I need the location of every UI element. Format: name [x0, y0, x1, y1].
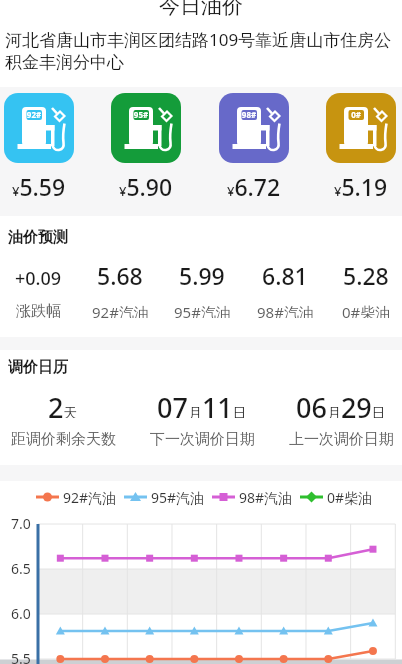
staticText: 0#柴油 [342, 302, 391, 318]
staticText: 2天 [48, 389, 78, 418]
staticText: 涨跌幅 [16, 302, 61, 318]
button[interactable]: 98# [219, 93, 289, 163]
staticText: ¥5.19 [334, 171, 388, 202]
staticText: 河北省唐山市丰润区团结路109号靠近唐山市住房公积金丰润分中心 [5, 28, 398, 73]
staticText: 今日油价 [159, 0, 243, 19]
staticText: 0# [348, 109, 364, 120]
staticText: 95# [133, 109, 149, 120]
staticText: 0#柴油 [327, 488, 373, 506]
staticText: 上一次调价日期 [289, 430, 394, 446]
staticText: 95#汽油 [151, 488, 205, 506]
staticText: 油价预测 [8, 228, 68, 247]
staticText: 5.5 [11, 649, 31, 664]
staticText: 98# [241, 109, 257, 120]
staticText: 98#汽油 [239, 488, 293, 506]
staticText: 92#汽油 [63, 488, 117, 506]
staticText: 6.0 [11, 604, 31, 622]
staticText: 距调价剩余天数 [11, 430, 116, 446]
staticText: 06月29日 [296, 389, 386, 418]
staticText: 6.81 [262, 260, 308, 291]
staticText: +0.09 [15, 266, 62, 291]
staticText: 92#汽油 [92, 302, 149, 318]
staticText: 5.99 [179, 260, 225, 291]
staticText: 5.28 [343, 260, 389, 291]
staticText: ¥6.72 [227, 171, 281, 202]
staticText: 7.0 [11, 514, 31, 532]
staticText: 5.68 [97, 260, 143, 291]
button[interactable]: 0# [326, 93, 396, 163]
staticText: 下一次调价日期 [150, 430, 255, 446]
staticText: ¥5.90 [119, 171, 173, 202]
staticText: 07月11日 [157, 389, 247, 418]
staticText: 92# [26, 109, 42, 120]
staticText: 98#汽油 [257, 302, 314, 318]
staticText: ¥5.59 [12, 171, 66, 202]
staticText: 95#汽油 [174, 302, 231, 318]
staticText: 6.5 [11, 559, 31, 577]
staticText: 调价日历 [8, 358, 68, 377]
button[interactable]: 92# [4, 93, 74, 163]
button[interactable]: 95# [111, 93, 181, 163]
